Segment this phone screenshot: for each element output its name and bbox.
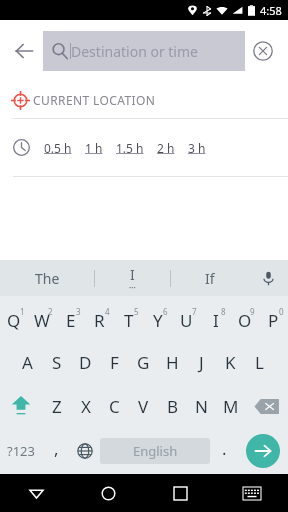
button[interactable]: . [210, 428, 238, 474]
staticText: 8 [221, 306, 226, 317]
staticText: F [110, 351, 119, 374]
button[interactable]: W [28, 296, 56, 340]
staticText: 4:58 [260, 3, 282, 18]
staticText: 4 [105, 306, 110, 317]
button[interactable]: Back [0, 474, 72, 512]
button[interactable]: U [172, 296, 201, 340]
button[interactable]: I [201, 296, 230, 340]
staticText: 9 [250, 306, 255, 317]
button[interactable]: M [216, 384, 245, 428]
button[interactable]: 0.5 h [40, 134, 76, 162]
staticText: X [81, 395, 91, 418]
button[interactable]: Y [143, 296, 172, 340]
staticText: A [22, 351, 33, 374]
staticText: The [35, 269, 60, 288]
staticText: 3 [76, 306, 81, 317]
staticText: G [137, 351, 150, 374]
staticText: E [66, 309, 76, 332]
staticText: Q [7, 309, 21, 332]
button[interactable]: English [100, 438, 210, 464]
staticText: H [166, 351, 179, 374]
button[interactable]: 3 h [184, 134, 210, 162]
button[interactable]: T [114, 296, 143, 340]
button[interactable]: S [42, 340, 71, 384]
staticText: V [138, 395, 149, 418]
button[interactable]: Q [0, 296, 28, 340]
staticText: Y [153, 309, 163, 332]
button[interactable]: F [100, 340, 129, 384]
staticText: 7 [192, 306, 197, 317]
button[interactable]: Keyboard [216, 474, 288, 512]
button[interactable]: 2 h [153, 134, 179, 162]
button[interactable]: If [171, 260, 249, 296]
staticText: T [124, 309, 134, 332]
staticText: I [213, 309, 219, 332]
button[interactable]: Destination or time [43, 31, 245, 71]
staticText: L [255, 351, 264, 374]
staticText: B [167, 395, 179, 418]
button[interactable]: Change language [70, 428, 100, 474]
staticText: 0 [279, 306, 284, 317]
button[interactable]: D [71, 340, 100, 384]
staticText: D [79, 351, 92, 374]
staticText: U [180, 309, 193, 332]
button[interactable]: G [129, 340, 158, 384]
button[interactable]: O [230, 296, 259, 340]
staticText: 3 h [188, 140, 206, 156]
button[interactable]: ?123 [0, 428, 42, 474]
staticText: Z [52, 395, 62, 418]
staticText: M [223, 395, 239, 418]
staticText: 6 [163, 306, 168, 317]
staticText: I [130, 265, 135, 284]
button[interactable]: Recents [144, 474, 216, 512]
staticText: . [222, 437, 227, 460]
button[interactable]: Z [42, 384, 71, 428]
staticText: K [225, 351, 236, 374]
button[interactable]: CURRENT LOCATION [0, 82, 288, 118]
staticText: ••• [129, 284, 136, 292]
button[interactable]: H [158, 340, 187, 384]
button[interactable]: P [259, 296, 288, 340]
staticText: 1.5 h [116, 140, 144, 156]
button[interactable]: 1 h [81, 134, 107, 162]
staticText: English [133, 442, 178, 460]
button[interactable]: Back [6, 33, 42, 69]
button[interactable]: C [100, 384, 129, 428]
staticText: 0.5 h [44, 140, 72, 156]
button[interactable]: Voice input [249, 260, 288, 296]
button[interactable]: Backspace [245, 384, 288, 428]
staticText: If [205, 269, 215, 288]
button[interactable]: 1.5 h [112, 134, 148, 162]
button[interactable]: N [187, 384, 216, 428]
button[interactable]: Home [72, 474, 144, 512]
staticText: O [238, 309, 252, 332]
staticText: J [199, 351, 204, 374]
button[interactable]: J [187, 340, 216, 384]
staticText: 2 h [157, 140, 175, 156]
staticText: 2 [48, 306, 53, 317]
button[interactable]: L [245, 340, 274, 384]
button[interactable]: R [85, 296, 114, 340]
staticText: C [109, 395, 120, 418]
staticText: R [94, 309, 105, 332]
button[interactable]: Shift [0, 384, 42, 428]
button[interactable]: The [0, 260, 94, 296]
staticText: , [54, 437, 59, 460]
staticText: N [195, 395, 208, 418]
button[interactable]: V [129, 384, 158, 428]
staticText: 1 [20, 306, 25, 317]
staticText: W [34, 309, 50, 332]
button[interactable]: , [42, 428, 70, 474]
staticText: P [268, 309, 279, 332]
button[interactable]: X [71, 384, 100, 428]
staticText: S [52, 351, 62, 374]
button[interactable]: E [56, 296, 85, 340]
button[interactable]: Clear [246, 34, 280, 68]
staticText: ?123 [7, 442, 35, 460]
button[interactable]: K [216, 340, 245, 384]
button[interactable]: A [13, 340, 42, 384]
staticText: 1 h [85, 140, 103, 156]
button[interactable]: I [95, 260, 170, 296]
button[interactable]: Enter [238, 428, 288, 474]
button[interactable]: B [158, 384, 187, 428]
